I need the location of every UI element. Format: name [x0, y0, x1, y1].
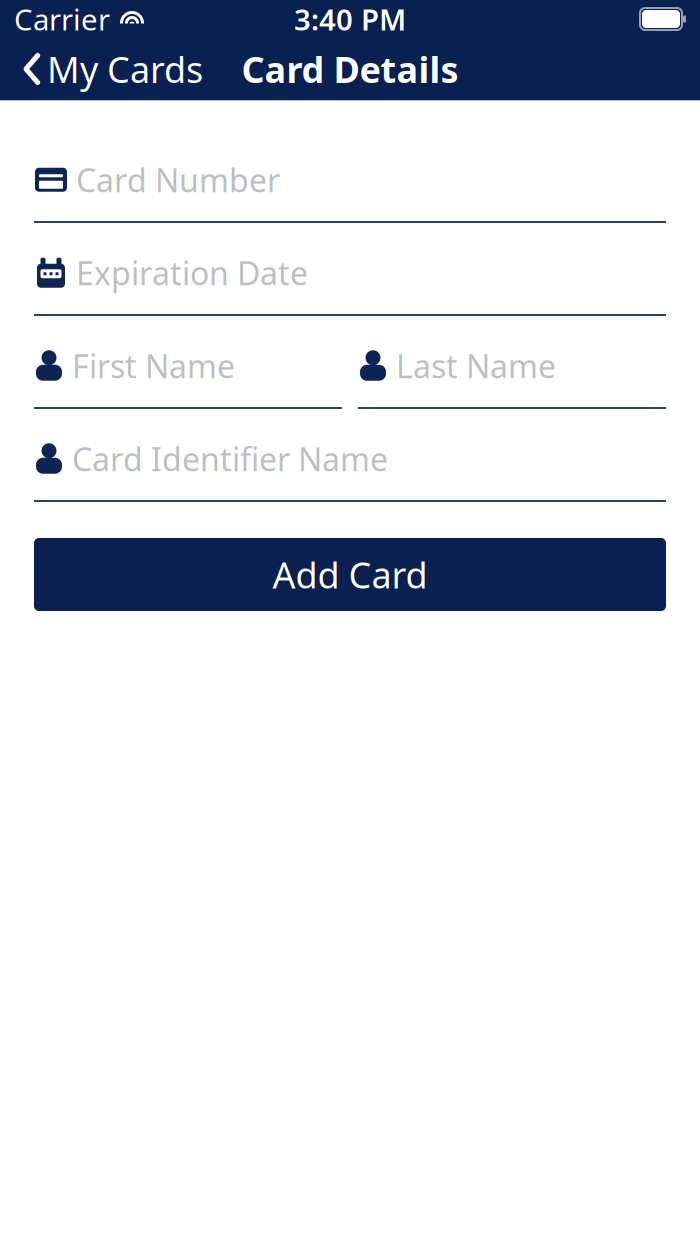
staticText: Last Name [396, 344, 556, 387]
staticText: Expiration Date [76, 251, 308, 294]
button[interactable]: Expiration Date [34, 223, 666, 316]
button[interactable]: Add Card [34, 538, 666, 611]
button[interactable]: Card Number [34, 130, 666, 223]
staticText: Card Details [241, 45, 458, 93]
button[interactable]: Last Name [358, 316, 666, 409]
staticText: My Cards [47, 45, 203, 93]
staticText: First Name [72, 344, 235, 387]
button[interactable]: Card Identifier Name [34, 409, 666, 502]
staticText: Card Identifier Name [72, 437, 388, 480]
staticText: 3:40 PM [294, 0, 406, 38]
staticText: Add Card [272, 551, 427, 598]
staticText: Carrier [14, 0, 110, 38]
button[interactable]: First Name [34, 316, 342, 409]
button[interactable]: My Cards [0, 38, 213, 100]
staticText: Card Number [76, 158, 280, 201]
